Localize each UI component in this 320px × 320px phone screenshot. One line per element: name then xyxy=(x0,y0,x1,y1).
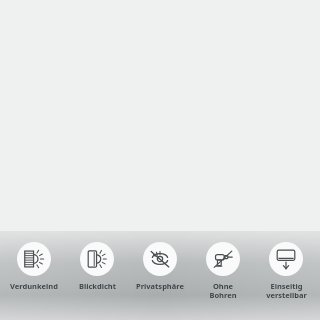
button[interactable]: Einseitig verstellbar xyxy=(257,231,315,301)
button[interactable]: Blickdicht xyxy=(68,231,126,291)
other: Einseitig verstellbar xyxy=(269,242,303,276)
button[interactable]: Ohne Bohren xyxy=(194,231,252,301)
staticText: Verdunkelnd xyxy=(10,281,58,291)
button[interactable]: Privatsphäre xyxy=(131,231,189,291)
button[interactable]: Verdunkelnd xyxy=(5,231,63,291)
other: Blickdicht xyxy=(80,242,114,276)
staticText: Blickdicht xyxy=(79,281,116,291)
staticText: Einseitig verstellbar xyxy=(266,281,307,301)
other: Ohne Bohren xyxy=(206,242,240,276)
staticText: Privatsphäre xyxy=(136,281,184,291)
staticText: Ohne Bohren xyxy=(209,281,237,301)
other: Privatsphäre xyxy=(143,242,177,276)
other: Verdunkelnd xyxy=(17,242,51,276)
